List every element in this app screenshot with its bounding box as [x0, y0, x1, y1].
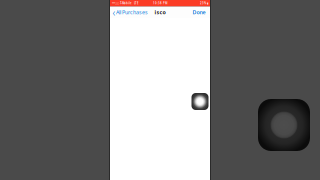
staticText: •••○○ T-Mobile LTE	[112, 1, 138, 5]
button[interactable]: ‹	[110, 4, 148, 20]
staticText: Done	[192, 9, 205, 16]
button[interactable]: AssistiveTouch	[191, 93, 208, 110]
button[interactable]: AssistiveTouch	[258, 99, 310, 151]
button[interactable]: Done	[192, 8, 210, 17]
staticText: isco	[154, 9, 165, 16]
staticText: All Purchases	[116, 9, 148, 16]
staticText: 10:38 PM	[153, 1, 167, 5]
staticText: ‹	[112, 5, 115, 19]
staticText: 23% ▮	[200, 1, 208, 5]
